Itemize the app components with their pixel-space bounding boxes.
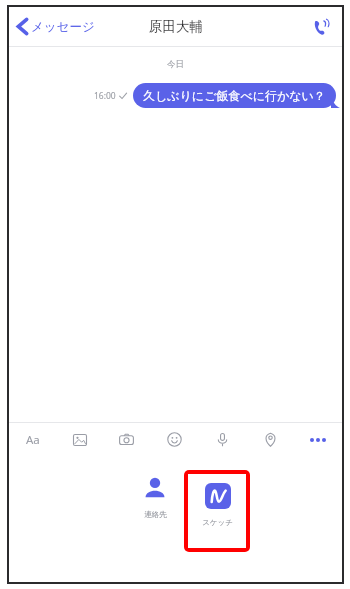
button[interactable]: 音声通話 — [306, 12, 336, 42]
button[interactable]: 位置情報 — [246, 423, 294, 456]
staticText: スケッチ — [202, 518, 233, 527]
staticText: 久しぶりにご飯食べに行かない？ — [143, 88, 326, 103]
button[interactable]: 音声入力 — [198, 423, 246, 456]
button[interactable]: その他 — [294, 423, 342, 456]
staticText: メッセージ — [31, 19, 95, 35]
staticText: 連絡先 — [144, 510, 167, 519]
button[interactable]: スケッチ — [188, 474, 246, 548]
button[interactable]: 絵文字 — [150, 423, 198, 456]
button[interactable]: 連絡先 — [126, 470, 184, 522]
staticText: 16:00 — [94, 90, 116, 102]
button[interactable]: 文字スタイル — [9, 423, 56, 456]
staticText: 原田大輔 — [149, 18, 203, 35]
button[interactable]: 久しぶりにご飯食べに行かない？ — [133, 83, 336, 108]
staticText: 今日 — [9, 59, 342, 70]
staticText: Aa — [26, 432, 40, 448]
button[interactable]: メッセージ — [9, 14, 103, 39]
button[interactable]: 写真 — [56, 423, 103, 456]
button[interactable]: カメラ — [103, 423, 150, 456]
